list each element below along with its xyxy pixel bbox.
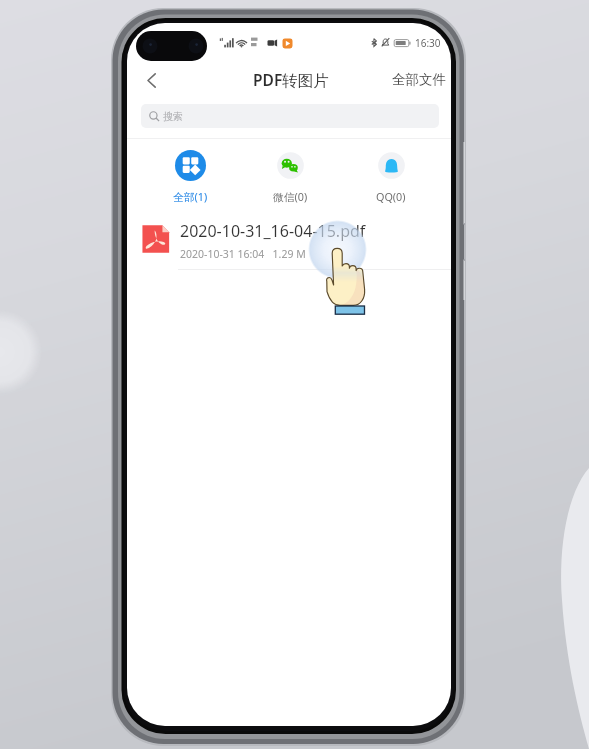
staticText: 2020-10-31_16-04-15.pdf [180, 220, 366, 242]
staticText: 微信(0) [273, 189, 308, 204]
staticText: 全部(1) [173, 189, 208, 204]
button[interactable]: Back [135, 64, 167, 96]
button[interactable]: 全部文件 [382, 65, 451, 94]
button[interactable]: 微信(0) [242, 145, 338, 204]
staticText: 2020-10-31 16:04 1.29 M [180, 247, 306, 261]
button[interactable]: QQ(0) [343, 145, 439, 204]
button[interactable]: 2020-10-31_16-04-15.pdf [127, 213, 451, 269]
button[interactable]: 全部(1) [142, 145, 238, 204]
button[interactable]: 搜索 [141, 104, 439, 128]
staticText: 全部文件 [392, 71, 446, 88]
staticText: 搜索 [163, 110, 183, 123]
staticText: QQ(0) [376, 189, 406, 204]
staticText: 16:30 [415, 36, 441, 50]
staticText: PDF转图片 [253, 69, 329, 90]
